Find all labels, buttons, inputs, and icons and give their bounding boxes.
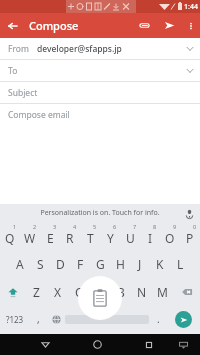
- button[interactable]: S: [30, 250, 50, 278]
- button[interactable]: E: [40, 221, 60, 250]
- staticText: F: [77, 256, 84, 272]
- staticText: C: [75, 284, 83, 300]
- staticText: U: [126, 230, 135, 246]
- button[interactable]: V: [89, 278, 110, 306]
- staticText: 5: [93, 223, 97, 230]
- staticText: L: [177, 256, 184, 272]
- staticText: M: [157, 284, 168, 300]
- staticText: D: [56, 256, 65, 272]
- staticText: 1:44: [184, 2, 198, 12]
- button[interactable]: Backspace: [173, 278, 200, 306]
- button[interactable]: I: [140, 221, 160, 250]
- button[interactable]: C: [68, 278, 89, 306]
- staticText: 8: [153, 223, 157, 230]
- button[interactable]: Hide keyboard: [170, 334, 196, 355]
- staticText: 4: [73, 223, 77, 230]
- button[interactable]: H: [110, 250, 130, 278]
- staticText: Compose: [29, 18, 79, 33]
- staticText: .: [157, 312, 160, 326]
- staticText: ?123: [6, 314, 24, 325]
- button[interactable]: B: [110, 278, 131, 306]
- staticText: 0: [193, 223, 197, 230]
- staticText: H: [116, 256, 125, 272]
- staticText: X: [54, 284, 62, 300]
- button[interactable]: Shift: [0, 278, 26, 306]
- button[interactable]: ?123: [0, 306, 29, 332]
- button[interactable]: From: [0, 38, 200, 60]
- staticText: Z: [33, 284, 40, 300]
- button[interactable]: Enter: [167, 306, 200, 332]
- button[interactable]: T: [80, 221, 100, 250]
- button[interactable]: Navigate up: [0, 13, 25, 38]
- button[interactable]: Attach file: [132, 13, 157, 38]
- staticText: J: [138, 256, 142, 272]
- button[interactable]: F: [70, 250, 90, 278]
- staticText: From: [8, 43, 29, 55]
- staticText: V: [96, 284, 104, 300]
- staticText: B: [117, 284, 125, 300]
- staticText: I: [148, 230, 153, 246]
- button[interactable]: Recent apps: [136, 334, 162, 355]
- staticText: P: [186, 230, 194, 246]
- button[interactable]: P: [180, 221, 200, 250]
- staticText: To: [8, 65, 18, 77]
- staticText: S: [37, 256, 44, 272]
- button[interactable]: A: [10, 250, 30, 278]
- button[interactable]: O: [160, 221, 180, 250]
- staticText: Subject: [8, 87, 38, 99]
- staticText: Compose email: [8, 109, 70, 121]
- staticText: G: [96, 256, 105, 272]
- button[interactable]: W: [20, 221, 40, 250]
- button[interactable]: Clipboard: [78, 276, 122, 320]
- staticText: Y: [107, 230, 114, 246]
- button[interactable]: Z: [26, 278, 47, 306]
- button[interactable]: R: [60, 221, 80, 250]
- staticText: ,: [37, 312, 40, 326]
- button[interactable]: G: [90, 250, 110, 278]
- staticText: W: [24, 230, 36, 246]
- staticText: O: [165, 230, 175, 246]
- button[interactable]: J: [130, 250, 150, 278]
- button[interactable]: L: [170, 250, 190, 278]
- button[interactable]: Period: [149, 306, 167, 332]
- staticText: 7: [133, 223, 137, 230]
- button[interactable]: Change keyboard language: [47, 306, 65, 332]
- staticText: N: [137, 284, 147, 300]
- staticText: 2: [33, 223, 37, 230]
- button[interactable]: To: [0, 60, 200, 82]
- button[interactable]: D: [50, 250, 70, 278]
- staticText: 1: [13, 223, 17, 230]
- button[interactable]: X: [47, 278, 68, 306]
- staticText: R: [66, 230, 74, 246]
- button[interactable]: Home: [84, 334, 110, 355]
- staticText: K: [156, 256, 164, 272]
- button[interactable]: Back: [32, 334, 58, 355]
- button[interactable]: K: [150, 250, 170, 278]
- button[interactable]: Compose email: [0, 104, 200, 126]
- button[interactable]: N: [131, 278, 152, 306]
- staticText: E: [47, 230, 54, 246]
- button[interactable]: Subject: [0, 82, 200, 104]
- staticText: Q: [5, 230, 15, 246]
- button[interactable]: M: [152, 278, 173, 306]
- staticText: developer@sfapps.jp: [37, 43, 122, 55]
- staticText: T: [87, 230, 94, 246]
- button[interactable]: Y: [100, 221, 120, 250]
- staticText: 6: [113, 223, 117, 230]
- button[interactable]: More options: [182, 17, 200, 35]
- button[interactable]: Q: [0, 221, 20, 250]
- button[interactable]: U: [120, 221, 140, 250]
- button[interactable]: Voice input: [183, 207, 195, 219]
- button[interactable]: Send: [157, 13, 182, 38]
- button[interactable]: Space: [65, 311, 149, 327]
- staticText: 9: [173, 223, 177, 230]
- button[interactable]: Comma: [29, 306, 47, 332]
- staticText: A: [16, 256, 24, 272]
- staticText: Personalization is on. Touch for info.: [40, 208, 160, 218]
- staticText: 3: [53, 223, 57, 230]
